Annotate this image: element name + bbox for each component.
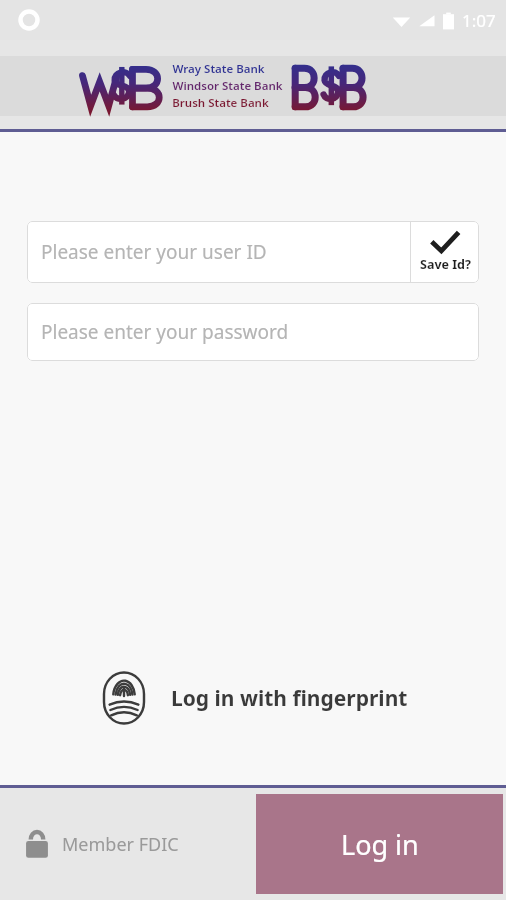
staticText: Member FDIC [62, 832, 179, 857]
button[interactable]: Log in [256, 794, 503, 894]
staticText: Brush State Bank [172, 95, 269, 111]
staticText: Log in with fingerprint [171, 684, 408, 713]
staticText: Please enter your user ID [41, 239, 267, 265]
staticText: Windsor State Bank [172, 78, 283, 94]
button[interactable]: Please enter your password [27, 303, 479, 361]
button[interactable]: Log in with fingerprint [0, 659, 506, 737]
button[interactable]: Save Id? [411, 221, 479, 283]
staticText: Log in [341, 826, 419, 863]
button[interactable]: Member FDIC [0, 819, 189, 869]
staticText: Wray State Bank [172, 61, 265, 77]
button[interactable]: Please enter your user ID [27, 221, 410, 283]
staticText: Please enter your password [41, 319, 289, 345]
staticText: 1:07 [462, 9, 496, 32]
staticText: Save Id? [420, 256, 471, 273]
